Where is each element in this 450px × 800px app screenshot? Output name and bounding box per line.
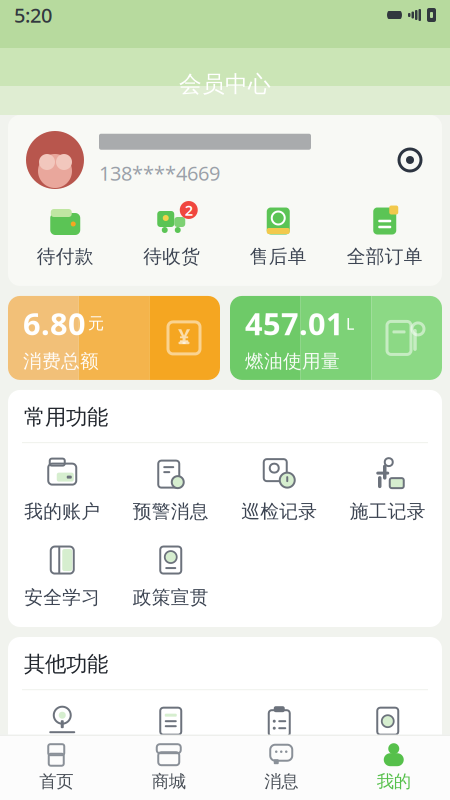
button[interactable]: 消息 (225, 736, 337, 792)
button[interactable]: 2 (118, 201, 225, 272)
staticText: 商城 (152, 771, 186, 792)
button[interactable]: 首页 (0, 736, 112, 792)
staticText: 施工记录 (350, 500, 426, 523)
staticText: 安全学习 (24, 586, 100, 609)
button[interactable]: 我的账户 (8, 451, 116, 529)
staticText: 待付款 (37, 245, 94, 268)
staticText: 6.80 (23, 303, 86, 344)
staticText: 其他功能 (24, 651, 108, 677)
button[interactable]: 监管地址 (8, 698, 116, 776)
button[interactable]: 预警消息 (116, 451, 225, 529)
button[interactable]: 6.80 (8, 296, 220, 380)
staticText: 全部订单 (347, 245, 423, 268)
button[interactable]: 安全学习 (8, 537, 116, 615)
button[interactable]: 全部订单 (331, 201, 438, 272)
button[interactable]: 售后单 (225, 201, 331, 272)
staticText: 政策宣贯 (133, 586, 209, 609)
staticText: 巡检记录 (241, 500, 317, 523)
staticText: 预警消息 (133, 500, 209, 523)
staticText: 售后单 (250, 245, 307, 268)
button[interactable]: 我的收藏 (333, 698, 442, 776)
button[interactable]: 商城 (112, 736, 225, 792)
staticText: ¥ (178, 322, 190, 350)
staticText: 457.01 (245, 303, 344, 344)
staticText: 我的收藏 (350, 747, 426, 770)
staticText: 监管地址 (24, 747, 100, 770)
staticText: 我的账户 (24, 500, 100, 523)
button[interactable]: 138****4669 (8, 115, 442, 201)
button[interactable]: 政策宣贯 (116, 537, 225, 615)
staticText: 消息 (264, 771, 298, 792)
staticText: 消费总额 (23, 350, 99, 373)
staticText: 首页 (39, 771, 73, 792)
button[interactable]: 457.01 (230, 296, 442, 380)
staticText: 我的 (377, 771, 411, 792)
staticText: 常用功能 (24, 404, 108, 430)
staticText: 5:20 (14, 2, 52, 28)
button[interactable]: 测出记录 (225, 698, 333, 776)
staticText: 2 (185, 200, 193, 220)
button[interactable]: 公需培训 (116, 698, 225, 776)
staticText: 元 (88, 314, 104, 333)
staticText: 燃油使用量 (245, 350, 340, 373)
staticText: 会员中心 (179, 70, 271, 98)
button[interactable]: 巡检记录 (225, 451, 333, 529)
staticText: 138****4669 (99, 160, 220, 186)
button[interactable]: 我的 (337, 736, 450, 792)
button[interactable]: 待付款 (12, 201, 118, 272)
staticText: 测出记录 (241, 747, 317, 770)
staticText: 待收货 (143, 245, 200, 268)
button[interactable]: 施工记录 (333, 451, 442, 529)
staticText: L (346, 313, 354, 334)
staticText: 玩意下载 · NBWYXH.COM.CN (73, 734, 376, 764)
staticText: 公需培训 (133, 747, 209, 770)
